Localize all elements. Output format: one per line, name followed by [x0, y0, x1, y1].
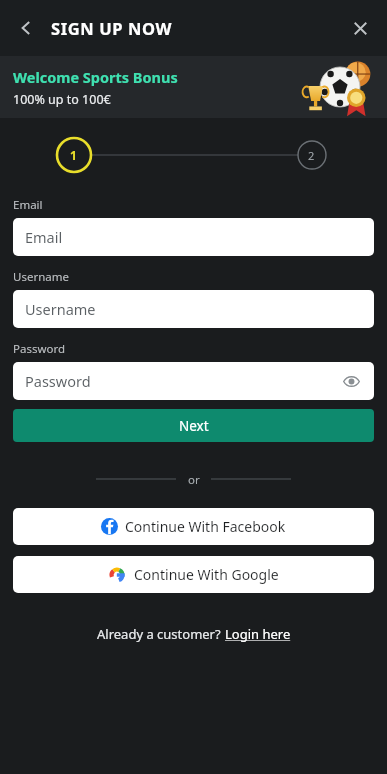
staticText: 2 — [308, 148, 315, 163]
button[interactable]: Continue With Google — [13, 556, 374, 593]
button[interactable]: Show password — [338, 368, 364, 394]
staticText: SIGN UP NOW — [51, 17, 173, 39]
button[interactable]: Password — [13, 362, 374, 400]
button[interactable]: Username — [13, 290, 374, 328]
staticText: Email — [13, 197, 43, 213]
staticText: Continue With Facebook — [125, 517, 286, 536]
staticText: Continue With Google — [134, 565, 279, 584]
staticText: Already a customer? — [97, 625, 225, 643]
button[interactable]: Back — [8, 10, 44, 46]
staticText: Username — [25, 299, 96, 319]
staticText: Login here — [225, 625, 291, 643]
button[interactable]: Email — [13, 218, 374, 256]
staticText: Password — [13, 341, 66, 357]
staticText: Password — [25, 371, 91, 391]
button[interactable]: Next — [13, 409, 374, 442]
staticText: 100% up to 100€ — [13, 91, 111, 108]
staticText: Username — [13, 269, 69, 285]
button[interactable]: Close — [342, 10, 378, 46]
button[interactable]: Login here — [225, 625, 291, 643]
staticText: or — [188, 472, 200, 486]
staticText: Email — [25, 227, 63, 247]
staticText: Welcome Sports Bonus — [13, 67, 178, 87]
button[interactable]: Continue With Facebook — [13, 508, 374, 545]
staticText: Next — [179, 417, 209, 435]
staticText: 1 — [70, 147, 77, 163]
